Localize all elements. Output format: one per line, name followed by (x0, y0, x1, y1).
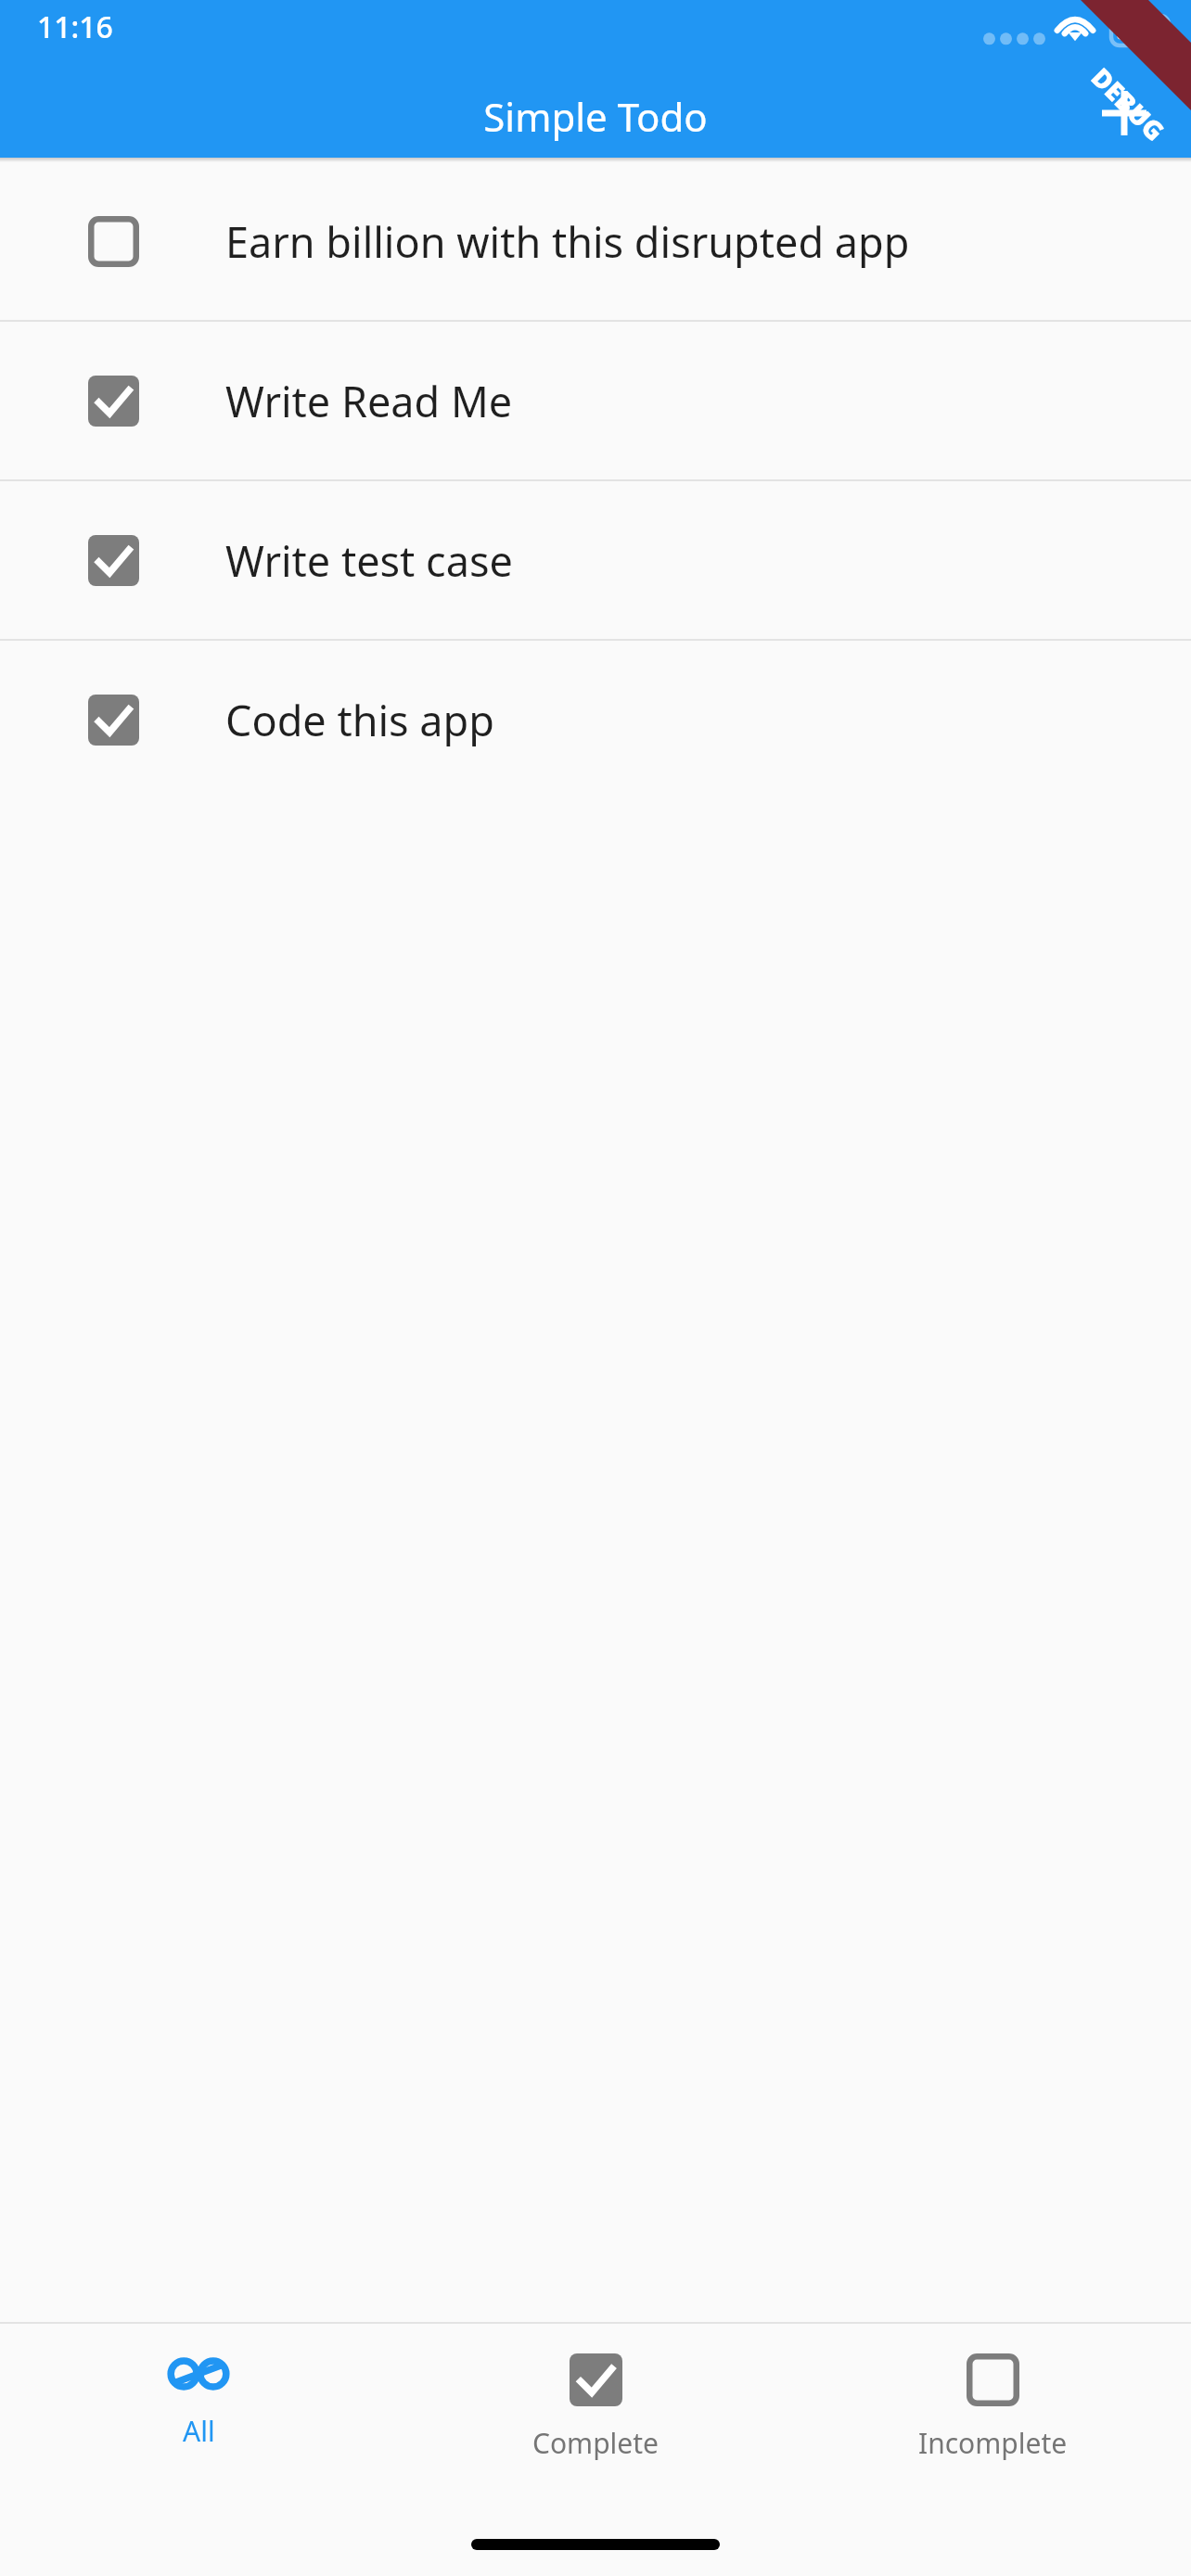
staticText: Complete (532, 2424, 660, 2462)
button[interactable]: Incomplete (794, 2324, 1191, 2462)
button[interactable]: Code this app (0, 641, 1191, 798)
staticText: Simple Todo (0, 90, 1191, 143)
staticText: All (183, 2412, 215, 2450)
button[interactable]: Write test case (0, 481, 1191, 639)
button[interactable]: Complete (397, 2324, 794, 2462)
staticText: Earn billion with this disrupted app (225, 213, 910, 270)
staticText: Incomplete (918, 2424, 1068, 2462)
staticText: Write test case (225, 532, 513, 589)
button[interactable]: Add todo (1078, 69, 1171, 158)
staticText: 11:16 (37, 6, 113, 47)
staticText: Write Read Me (225, 373, 513, 429)
button[interactable]: Write Read Me (0, 322, 1191, 479)
staticText: DEBUG (1084, 60, 1173, 148)
staticText: Code this app (225, 692, 494, 748)
button[interactable]: All (0, 2324, 397, 2450)
button[interactable]: Earn billion with this disrupted app (0, 162, 1191, 320)
other: All (168, 2353, 229, 2394)
